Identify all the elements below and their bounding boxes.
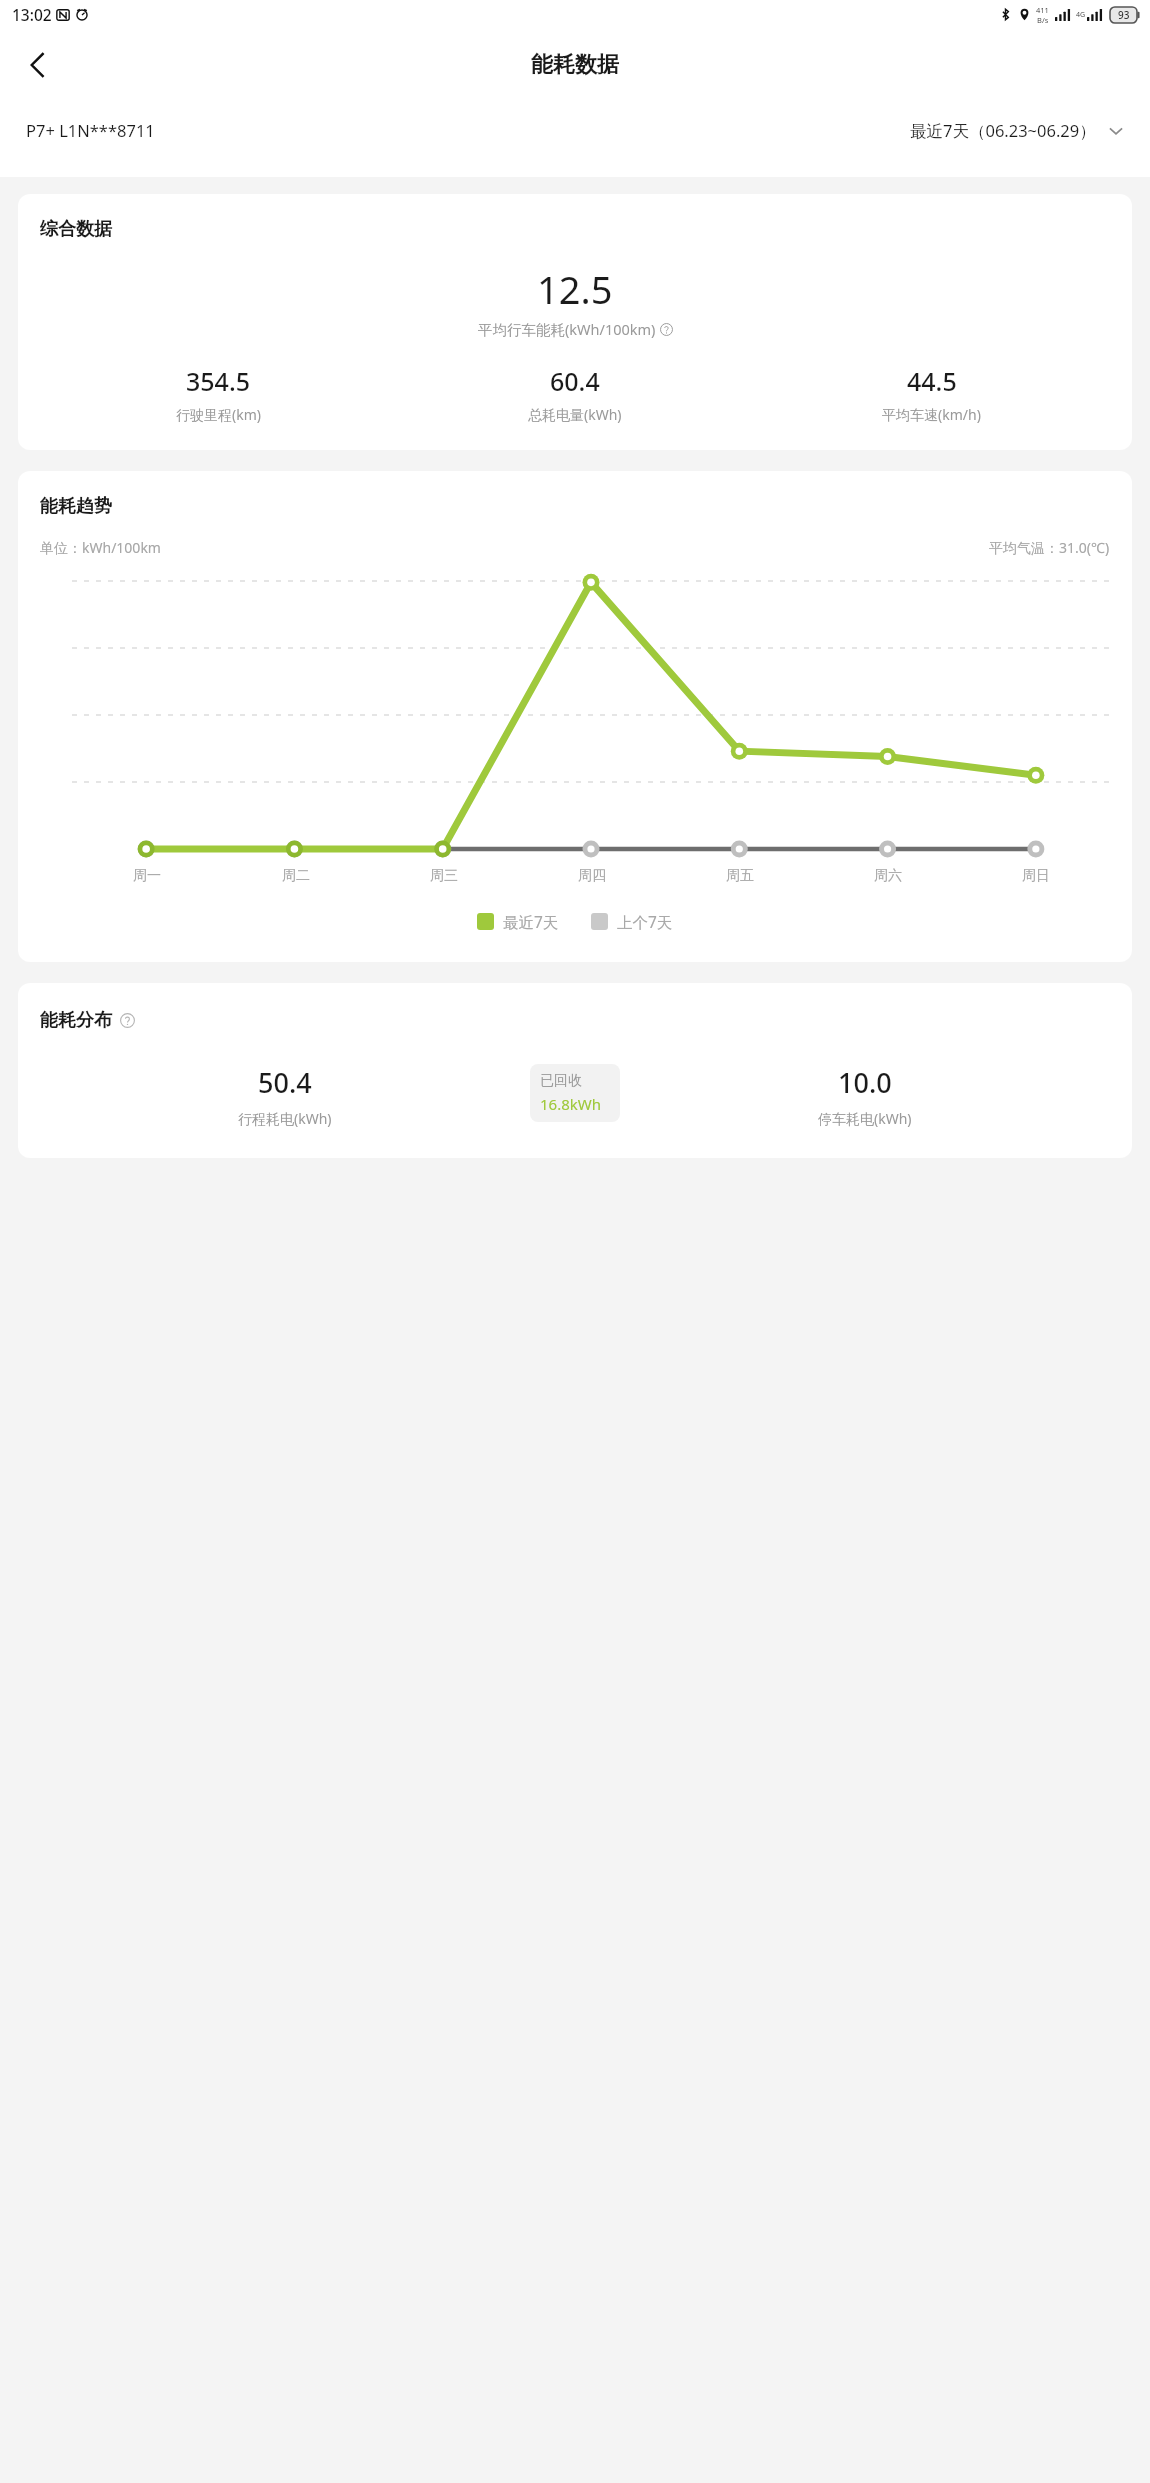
staticText: 周四	[578, 867, 606, 885]
staticText: 93	[1118, 8, 1130, 22]
staticText: 4G	[1076, 10, 1086, 20]
staticText: 最近7天	[503, 911, 559, 932]
staticText: 60.4	[550, 364, 600, 398]
staticText: 停车耗电(kWh)	[818, 1109, 912, 1128]
button[interactable]: 上个7天	[591, 911, 673, 932]
staticText: 能耗分布	[40, 1009, 112, 1032]
staticText: 44.5	[907, 364, 957, 398]
staticText: 411	[1036, 5, 1049, 15]
staticText: 平均车速(km/h)	[882, 405, 981, 424]
button[interactable]: 综合数据	[18, 194, 1132, 450]
staticText: 行程耗电(kWh)	[238, 1109, 332, 1128]
staticText: 能耗趋势	[40, 495, 112, 518]
button[interactable]: 能耗趋势	[18, 471, 1132, 962]
staticText: 平均气温：31.0(℃)	[989, 538, 1110, 557]
staticText: B/s	[1037, 15, 1049, 25]
staticText: 能耗数据	[531, 51, 619, 79]
button[interactable]: 最近7天（06.23~06.29）	[910, 119, 1124, 142]
staticText: 13:02	[12, 4, 52, 25]
staticText: 周五	[726, 867, 754, 885]
staticText: 周一	[133, 867, 161, 885]
staticText: 总耗电量(kWh)	[528, 405, 622, 424]
staticText: 周六	[874, 867, 902, 885]
staticText: 10.0	[838, 1064, 892, 1101]
button[interactable]: 最近7天	[477, 911, 559, 932]
staticText: 12.5	[537, 263, 613, 315]
button[interactable]: Back	[10, 37, 66, 93]
staticText: 上个7天	[617, 911, 673, 932]
staticText: 周二	[282, 867, 310, 885]
staticText: 周三	[430, 867, 458, 885]
button[interactable]: 能耗分布	[18, 983, 1132, 1158]
staticText: 354.5	[186, 364, 251, 398]
staticText: 50.4	[258, 1064, 312, 1101]
staticText: P7+ L1N***8711	[26, 119, 155, 141]
staticText: 16.8kWh	[540, 1094, 601, 1114]
staticText: 单位：kWh/100km	[40, 538, 161, 557]
staticText: 综合数据	[40, 218, 112, 241]
staticText: 最近7天（06.23~06.29）	[910, 119, 1096, 142]
staticText: 已回收	[540, 1072, 582, 1090]
staticText: 行驶里程(km)	[176, 405, 261, 424]
staticText: 平均行车能耗(kWh/100km)	[478, 319, 656, 339]
staticText: 周日	[1022, 867, 1050, 885]
